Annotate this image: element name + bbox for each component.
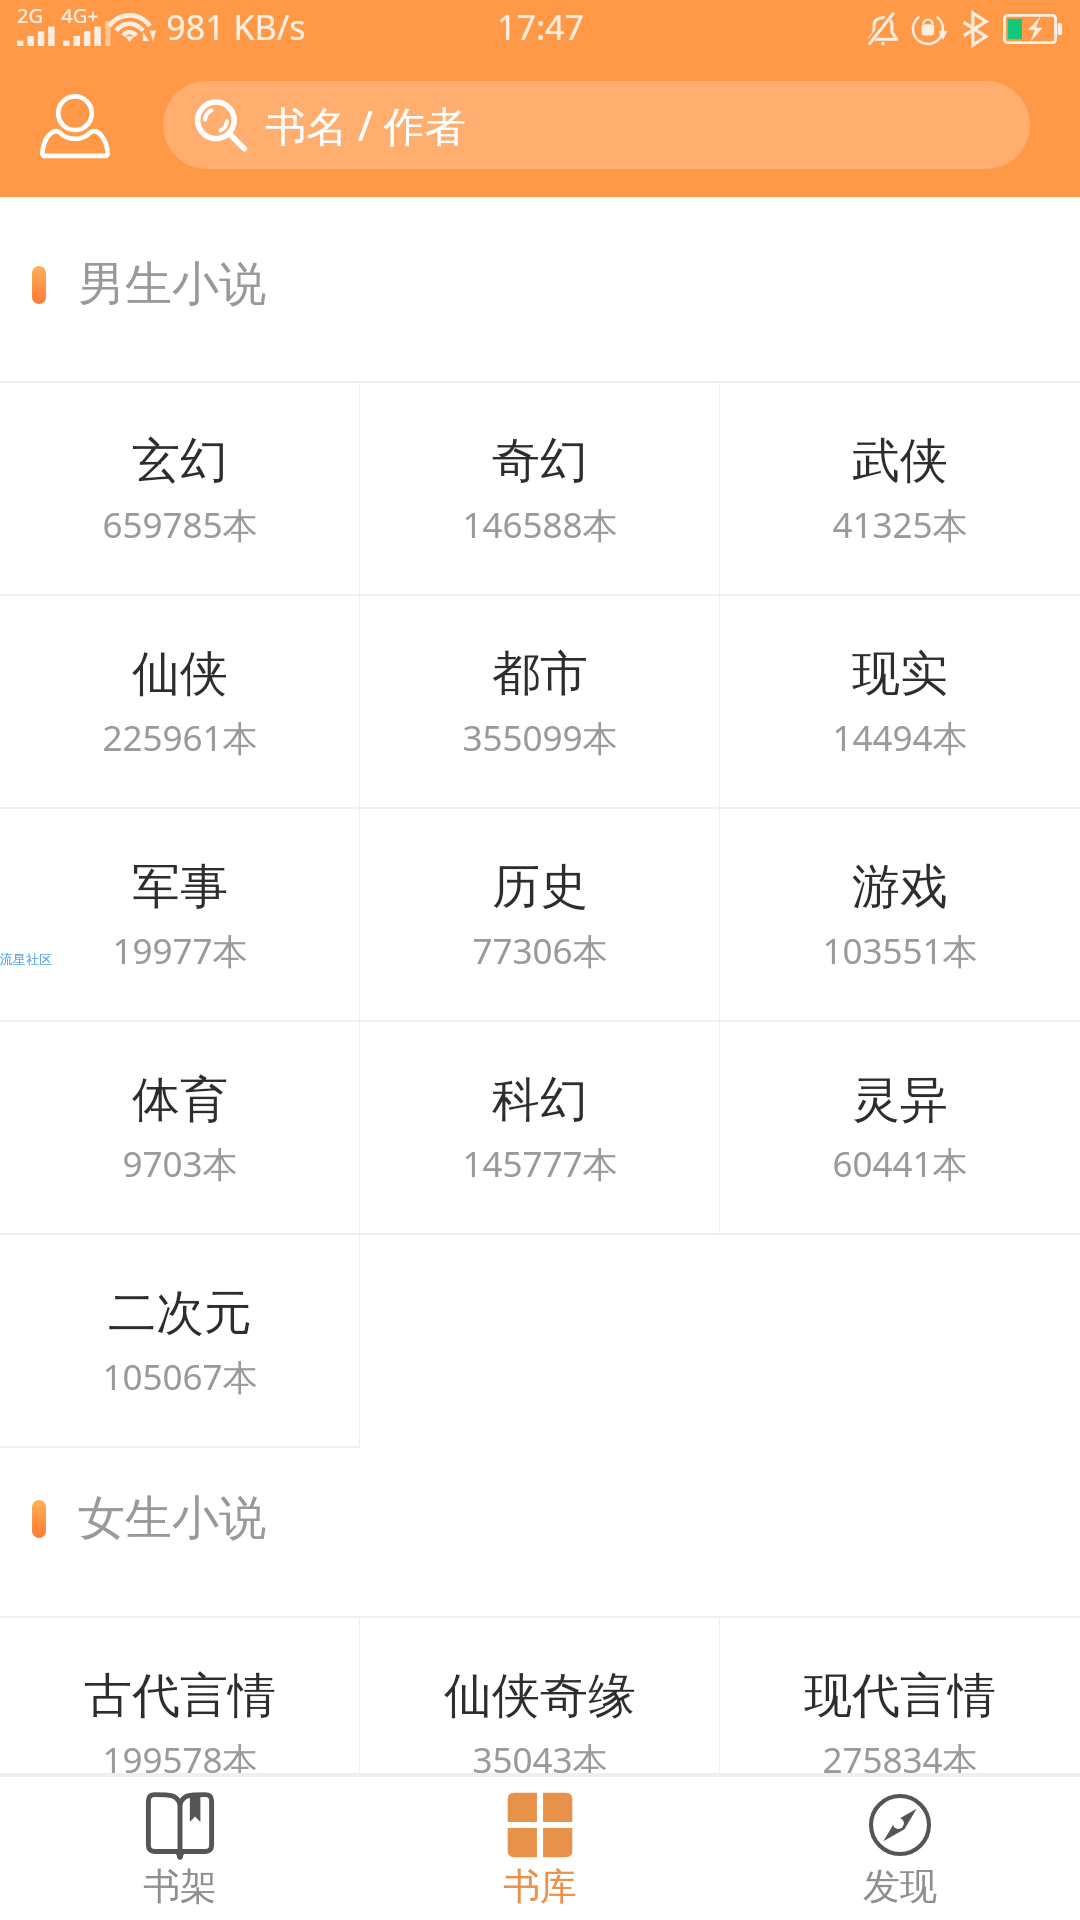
staticText: 2G: [17, 2, 43, 29]
button[interactable]: 书架: [0, 1777, 360, 1920]
staticText: 书名 / 作者: [265, 97, 466, 153]
staticText: 仙侠: [132, 644, 228, 704]
staticText: 19977本: [112, 927, 248, 975]
button[interactable]: 二次元: [0, 1235, 360, 1448]
staticText: 军事: [132, 857, 228, 917]
staticText: 体育: [132, 1070, 228, 1130]
staticText: 659785本: [102, 501, 258, 549]
staticText: 玄幻: [132, 431, 228, 491]
button[interactable]: 军事: [0, 809, 360, 1022]
staticText: 35043本: [472, 1736, 608, 1775]
staticText: 灵异: [852, 1070, 948, 1130]
button[interactable]: 仙侠奇缘: [360, 1618, 720, 1775]
staticText: 199578本: [102, 1736, 258, 1775]
staticText: 17:47: [497, 4, 584, 50]
button[interactable]: 发现: [720, 1777, 1080, 1920]
staticText: 男生小说: [78, 255, 266, 314]
staticText: 现实: [852, 644, 948, 704]
staticText: 77306本: [472, 927, 608, 975]
staticText: 发现: [863, 1863, 937, 1910]
staticText: 41325本: [832, 501, 968, 549]
staticText: 14494本: [832, 714, 968, 762]
button[interactable]: 现代言情: [720, 1618, 1080, 1775]
staticText: 145777本: [462, 1140, 618, 1188]
staticText: 都市: [492, 644, 588, 704]
button[interactable]: 体育: [0, 1022, 360, 1235]
staticText: 103551本: [822, 927, 978, 975]
staticText: 4G+: [61, 2, 99, 29]
button[interactable]: Search book title or author: [163, 81, 1030, 169]
button[interactable]: 现实: [720, 596, 1080, 809]
button[interactable]: Account: [32, 87, 118, 173]
staticText: 女生小说: [78, 1489, 266, 1548]
staticText: 275834本: [822, 1736, 978, 1775]
staticText: 225961本: [102, 714, 258, 762]
staticText: 355099本: [462, 714, 618, 762]
staticText: 历史: [492, 857, 588, 917]
staticText: 981 KB/s: [166, 4, 306, 50]
staticText: 流星社区: [0, 951, 52, 967]
staticText: 书库: [503, 1863, 577, 1910]
staticText: 60441本: [832, 1140, 968, 1188]
staticText: 现代言情: [804, 1666, 996, 1726]
staticText: 二次元: [108, 1283, 252, 1343]
staticText: 武侠: [852, 431, 948, 491]
button[interactable]: 仙侠: [0, 596, 360, 809]
button[interactable]: 游戏: [720, 809, 1080, 1022]
staticText: 105067本: [102, 1353, 258, 1401]
button[interactable]: 都市: [360, 596, 720, 809]
button[interactable]: 武侠: [720, 383, 1080, 596]
button[interactable]: 科幻: [360, 1022, 720, 1235]
button[interactable]: 书库: [360, 1777, 720, 1920]
staticText: 书架: [143, 1863, 217, 1910]
staticText: 科幻: [492, 1070, 588, 1130]
staticText: 奇幻: [492, 431, 588, 491]
staticText: 游戏: [852, 857, 948, 917]
button[interactable]: 奇幻: [360, 383, 720, 596]
staticText: 9703本: [122, 1140, 238, 1188]
button[interactable]: 玄幻: [0, 383, 360, 596]
staticText: 146588本: [462, 501, 618, 549]
button[interactable]: 灵异: [720, 1022, 1080, 1235]
button[interactable]: 古代言情: [0, 1618, 360, 1775]
button[interactable]: 历史: [360, 809, 720, 1022]
staticText: 古代言情: [84, 1666, 276, 1726]
staticText: 仙侠奇缘: [444, 1666, 636, 1726]
